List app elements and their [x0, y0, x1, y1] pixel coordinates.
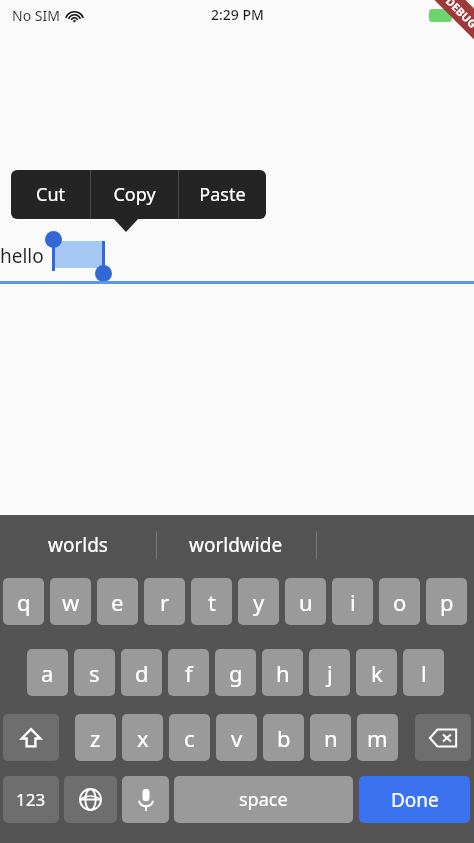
- staticText: w: [62, 587, 80, 617]
- staticText: g: [229, 658, 243, 688]
- staticText: p: [440, 587, 454, 617]
- staticText: Paste: [199, 182, 246, 207]
- staticText: No SIM: [12, 6, 60, 25]
- staticText: 123: [16, 788, 46, 811]
- button[interactable]: z: [75, 714, 116, 761]
- button[interactable]: m: [357, 714, 398, 761]
- button[interactable]: n: [310, 714, 351, 761]
- button[interactable]: g: [215, 649, 256, 696]
- button[interactable]: d: [121, 649, 162, 696]
- staticText: worlds: [48, 532, 108, 558]
- staticText: r: [160, 587, 170, 617]
- button[interactable]: t: [191, 578, 232, 625]
- button[interactable]: Paste: [179, 170, 266, 219]
- button[interactable]: k: [356, 649, 397, 696]
- button[interactable]: j: [309, 649, 350, 696]
- button[interactable]: b: [263, 714, 304, 761]
- staticText: k: [371, 658, 383, 688]
- staticText: z: [90, 723, 101, 753]
- button[interactable]: w: [50, 578, 91, 625]
- staticText: hello: [0, 243, 44, 269]
- staticText: u: [299, 587, 313, 617]
- staticText: a: [41, 658, 54, 688]
- button[interactable]: r: [144, 578, 185, 625]
- button[interactable]: y: [238, 578, 279, 625]
- staticText: h: [276, 658, 290, 688]
- button[interactable]: 123: [3, 776, 59, 823]
- staticText: space: [239, 787, 288, 812]
- staticText: q: [17, 587, 31, 617]
- button[interactable]: Done: [359, 776, 470, 823]
- staticText: y: [253, 587, 265, 617]
- button[interactable]: Shift: [3, 714, 59, 761]
- button[interactable]: Cut: [11, 170, 90, 219]
- button[interactable]: o: [379, 578, 420, 625]
- button[interactable]: a: [27, 649, 68, 696]
- button[interactable]: f: [168, 649, 209, 696]
- staticText: o: [393, 587, 407, 617]
- staticText: Copy: [113, 182, 156, 207]
- button[interactable]: Change keyboard language: [64, 776, 117, 823]
- staticText: 2:29 PM: [211, 5, 264, 24]
- staticText: Cut: [36, 182, 65, 207]
- staticText: Done: [391, 787, 439, 813]
- button[interactable]: Voice input: [122, 776, 169, 823]
- staticText: t: [208, 587, 216, 617]
- button[interactable]: p: [426, 578, 467, 625]
- button[interactable]: x: [122, 714, 163, 761]
- staticText: v: [231, 723, 243, 753]
- button[interactable]: space: [174, 776, 353, 823]
- staticText: DEBUG: [443, 0, 474, 31]
- staticText: b: [277, 723, 291, 753]
- button[interactable]: worlds: [0, 515, 156, 575]
- staticText: n: [324, 723, 338, 753]
- button[interactable]: v: [216, 714, 257, 761]
- button[interactable]: worldwide: [156, 515, 316, 575]
- staticText: worldwide: [189, 532, 283, 558]
- staticText: m: [367, 723, 388, 753]
- button[interactable]: c: [169, 714, 210, 761]
- staticText: s: [89, 658, 100, 688]
- button[interactable]: e: [97, 578, 138, 625]
- staticText: i: [350, 587, 356, 617]
- button[interactable]: h: [262, 649, 303, 696]
- staticText: x: [137, 723, 149, 753]
- staticText: e: [111, 587, 124, 617]
- staticText: f: [185, 658, 193, 688]
- staticText: l: [421, 658, 427, 688]
- button[interactable]: u: [285, 578, 326, 625]
- staticText: j: [327, 658, 333, 688]
- button[interactable]: s: [74, 649, 115, 696]
- button[interactable]: i: [332, 578, 373, 625]
- button[interactable]: l: [403, 649, 444, 696]
- staticText: c: [184, 723, 195, 753]
- button[interactable]: q: [3, 578, 44, 625]
- button[interactable]: Backspace: [415, 714, 471, 761]
- button[interactable]: Copy: [91, 170, 178, 219]
- staticText: d: [135, 658, 149, 688]
